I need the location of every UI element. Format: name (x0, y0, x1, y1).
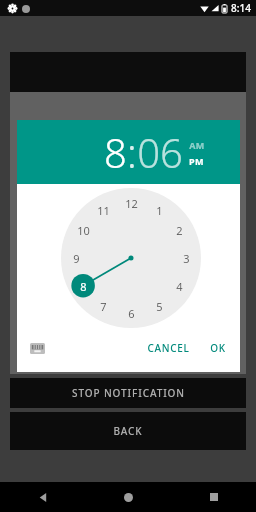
button[interactable]: Switch to text input (25, 336, 49, 360)
button[interactable]: 11 (92, 199, 114, 221)
staticText: 10 (77, 223, 90, 238)
button[interactable]: 12 (120, 192, 142, 214)
button[interactable]: STOP NOTIFICATION (10, 378, 246, 408)
button[interactable]: 5 (148, 295, 170, 317)
button[interactable]: AM (189, 139, 205, 151)
button[interactable]: CANCEL (141, 336, 196, 360)
button[interactable]: 7 (92, 295, 114, 317)
button[interactable]: Recent apps (171, 482, 256, 512)
button[interactable]: 06 (137, 125, 183, 179)
button[interactable]: 4 (168, 275, 190, 297)
staticText: 5 (156, 299, 163, 314)
button[interactable]: OK (204, 336, 232, 360)
staticText: BACK (113, 424, 143, 438)
staticText: 9 (73, 251, 80, 266)
button[interactable]: 10 (72, 219, 94, 241)
staticText: AM (189, 139, 205, 151)
staticText: 12 (125, 196, 138, 211)
staticText: 8 (104, 125, 127, 179)
staticText: 1 (156, 203, 163, 218)
staticText: CANCEL (147, 341, 190, 355)
button[interactable]: PM (189, 155, 204, 167)
staticText: 11 (97, 203, 110, 218)
staticText: 2 (176, 223, 183, 238)
button[interactable]: Back (0, 482, 86, 512)
staticText: 4 (176, 279, 183, 294)
button[interactable]: 1 (148, 199, 170, 221)
button[interactable]: 6 (120, 302, 142, 324)
button[interactable]: 2 (168, 219, 190, 241)
staticText: OK (210, 341, 226, 355)
staticText: 7 (100, 299, 107, 314)
staticText: : (127, 125, 137, 179)
button[interactable]: 3 (175, 247, 197, 269)
button[interactable]: BACK (10, 412, 246, 450)
button[interactable]: 8 (104, 125, 127, 179)
button[interactable]: 8 (72, 275, 94, 297)
staticText: 8 (80, 279, 87, 294)
staticText: 06 (137, 125, 183, 179)
staticText: 6 (128, 306, 135, 321)
staticText: PM (189, 155, 204, 167)
staticText: 8:14 (231, 1, 251, 15)
staticText: STOP NOTIFICATION (72, 386, 185, 400)
staticText: 3 (183, 251, 190, 266)
button[interactable]: Home (86, 482, 171, 512)
button[interactable]: 9 (65, 247, 87, 269)
